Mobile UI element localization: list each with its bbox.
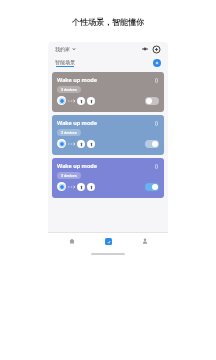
staticText: 我的家 — [55, 46, 70, 52]
button[interactable]: More options — [153, 163, 159, 169]
button[interactable]: More options — [153, 77, 159, 83]
button[interactable]: Create scene — [153, 59, 161, 67]
staticText: 3 devices — [61, 130, 77, 135]
staticText: 个性场景，智能懂你 — [72, 17, 144, 27]
button[interactable]: Wake up mode — [52, 72, 164, 112]
button[interactable]: Profile — [132, 233, 158, 249]
button[interactable]: Remote — [141, 45, 149, 53]
button[interactable]: Toggle scene — [145, 140, 159, 148]
button[interactable]: 智能场景 — [55, 59, 75, 67]
button[interactable]: Toggle scene — [145, 183, 159, 191]
staticText: 智能场景 — [55, 59, 75, 65]
staticText: Wake up mode — [57, 162, 97, 169]
button[interactable]: Home — [59, 233, 85, 249]
staticText: Wake up mode — [57, 119, 97, 126]
button[interactable]: Wake up mode — [52, 115, 164, 155]
button[interactable]: 我的家 — [55, 46, 76, 52]
staticText: Wake up mode — [57, 76, 97, 83]
button[interactable]: Scenes — [95, 233, 121, 249]
button[interactable]: Toggle scene — [145, 97, 159, 105]
button[interactable]: More options — [153, 120, 159, 126]
staticText: 3 devices — [61, 173, 77, 178]
button[interactable]: Add — [152, 45, 161, 54]
staticText: 3 devices — [61, 87, 77, 92]
button[interactable]: Wake up mode — [52, 158, 164, 198]
